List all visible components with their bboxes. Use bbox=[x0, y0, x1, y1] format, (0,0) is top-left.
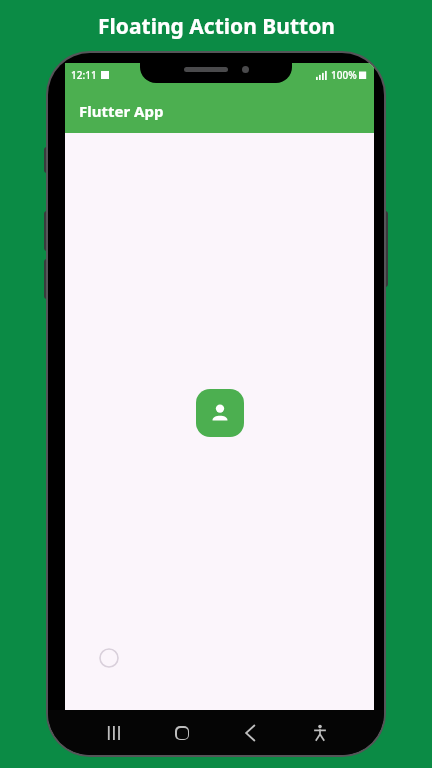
button[interactable]: Home bbox=[147, 710, 216, 755]
button[interactable]: Back bbox=[216, 710, 285, 755]
button[interactable]: Recent apps bbox=[78, 710, 147, 755]
staticText: 100% bbox=[331, 68, 357, 82]
button[interactable]: Profile bbox=[196, 389, 244, 437]
button[interactable]: Accessibility bbox=[285, 710, 354, 755]
staticText: Floating Action Button bbox=[98, 12, 335, 41]
staticText: 12:11 bbox=[71, 68, 97, 82]
staticText: Flutter App bbox=[79, 101, 164, 121]
